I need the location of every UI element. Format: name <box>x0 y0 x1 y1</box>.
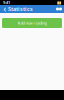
staticText: ▮▮ <box>57 0 61 5</box>
button[interactable]: Search <box>59 7 62 10</box>
staticText: ‹ <box>3 4 6 14</box>
staticText: Add new reading <box>17 20 46 26</box>
staticText: Statistics <box>8 5 33 13</box>
staticText: 9:41 <box>3 0 10 5</box>
button[interactable]: Add new reading <box>2 18 62 28</box>
button[interactable]: Profile <box>56 7 59 10</box>
button[interactable]: Back <box>2 5 8 13</box>
